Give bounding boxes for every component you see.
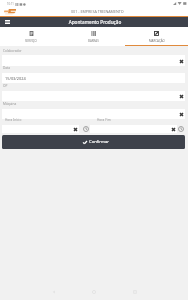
button[interactable]: Limpar Máquina (2, 109, 185, 119)
staticText: Apontamento Produção (13, 19, 177, 25)
button[interactable]: BARRAS (62, 27, 125, 46)
button[interactable]: Limpar Hora Fim (90, 125, 177, 133)
staticText: OP (3, 84, 8, 88)
button[interactable]: Limpar Máquina (178, 111, 184, 117)
staticText: Máquina (3, 102, 17, 106)
staticText: 15/03/2024 (5, 76, 26, 81)
button[interactable]: Confirmar (2, 135, 185, 149)
staticText: Hora Início (5, 118, 22, 122)
staticText: Colaborador (3, 49, 22, 53)
button[interactable]: Limpar Hora Início (73, 127, 78, 132)
button[interactable]: Limpar Colaborador (2, 55, 185, 66)
button[interactable]: Limpar OP (178, 93, 184, 99)
button[interactable]: Limpar Hora Fim (171, 127, 176, 132)
button[interactable]: Selecionar Hora Início (81, 124, 90, 133)
button[interactable]: Limpar OP (2, 91, 185, 101)
staticText: Data (3, 66, 11, 70)
staticText: SERVIÇO (25, 39, 37, 43)
button[interactable]: 15/03/2024 (2, 73, 185, 83)
button[interactable]: Selecionar Hora Fim (176, 124, 185, 133)
staticText: 10:11 (7, 2, 14, 6)
staticText: MARCAÇÃO (149, 39, 165, 43)
button[interactable]: MARCAÇÃO (125, 27, 188, 46)
staticText: BARRAS (88, 39, 99, 43)
staticText: Hora Fim (97, 118, 111, 122)
button[interactable]: Menu (0, 17, 14, 27)
button[interactable]: Limpar Colaborador (178, 58, 184, 64)
button[interactable]: SERVIÇO (0, 27, 62, 46)
staticText: Confirmar (89, 139, 110, 145)
button[interactable]: Limpar Hora Início (2, 125, 79, 133)
staticText: 001 - EMPRESA TREINAMENTO (71, 9, 124, 14)
